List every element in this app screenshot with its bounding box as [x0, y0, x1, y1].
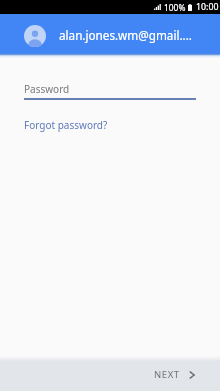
staticText: 10:00 — [196, 1, 219, 13]
button[interactable]: alan.jones.wm@gmail.... — [0, 14, 220, 54]
staticText: Forgot password? — [24, 118, 108, 132]
staticText: NEXT — [154, 368, 180, 381]
other: Next — [189, 371, 195, 379]
staticText: alan.jones.wm@gmail.... — [59, 27, 192, 43]
staticText: Password — [24, 82, 70, 96]
button[interactable]: Password — [0, 82, 220, 100]
button[interactable]: Forgot password? — [24, 118, 108, 132]
button[interactable]: NEXT — [154, 368, 195, 381]
staticText: 100% — [164, 2, 186, 13]
